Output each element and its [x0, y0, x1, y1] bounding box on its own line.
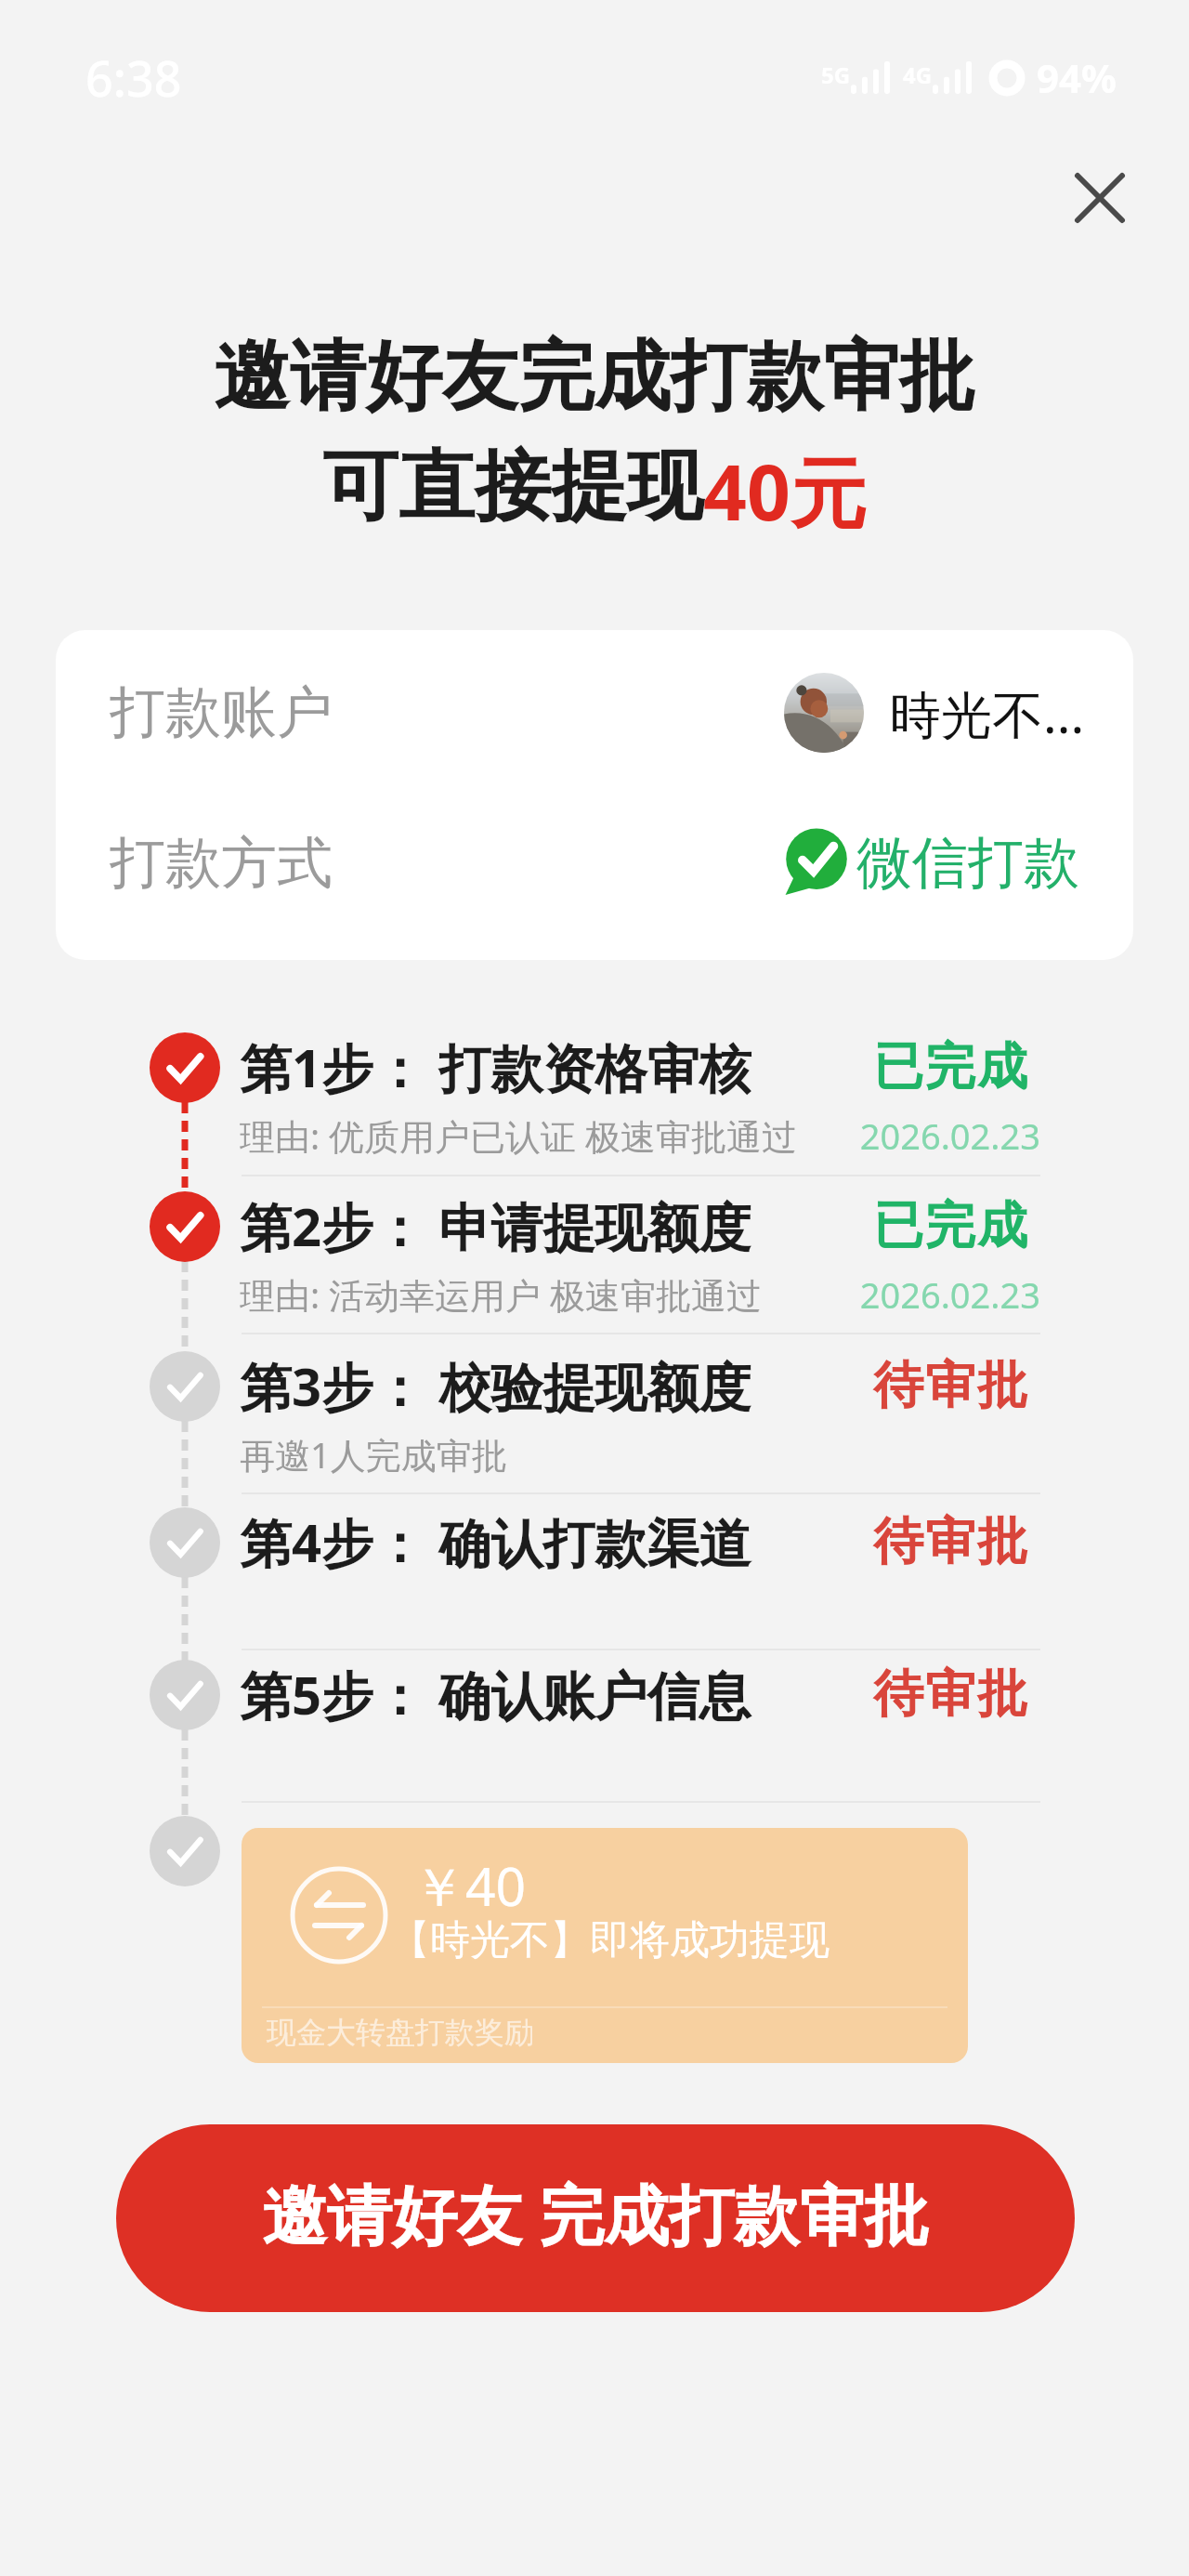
- staticText: 2026.02.23: [762, 1111, 1040, 1160]
- staticText: 已完成: [751, 1035, 1029, 1098]
- staticText: 5G: [821, 59, 851, 90]
- staticText: 待审批: [751, 1354, 1029, 1417]
- staticText: 時光不...: [890, 678, 1085, 748]
- staticText: 可直接提现: [322, 439, 703, 534]
- staticText: 邀请好友 完成打款审批: [262, 2169, 930, 2258]
- staticText: 待审批: [751, 1510, 1029, 1573]
- button[interactable]: [139, 1337, 1050, 1454]
- staticText: 【時光不】即将成功提现: [390, 1915, 830, 1965]
- staticText: 第1步： 打款资格审核: [240, 1032, 751, 1102]
- staticText: 第5步： 确认账户信息: [240, 1659, 751, 1729]
- button[interactable]: [139, 1493, 1050, 1583]
- staticText: 2026.02.23: [762, 1270, 1040, 1319]
- button[interactable]: [139, 1177, 1050, 1295]
- staticText: 已完成: [751, 1194, 1029, 1257]
- button[interactable]: 邀请好友 完成打款审批: [116, 2124, 1075, 2312]
- button[interactable]: ￥40: [242, 1828, 968, 2063]
- staticText: 邀请好友完成打款审批: [0, 329, 1189, 425]
- staticText: 打款方式: [110, 828, 333, 899]
- staticText: 打款账户: [110, 677, 333, 748]
- staticText: 40元: [703, 439, 867, 543]
- staticText: 第4步： 确认打款渠道: [240, 1506, 751, 1577]
- staticText: 第2步： 申请提现额度: [240, 1190, 751, 1261]
- staticText: 理由: 优质用户已认证 极速审批通过: [240, 1111, 797, 1160]
- staticText: 第3步： 校验提现额度: [240, 1350, 751, 1421]
- button[interactable]: [139, 1019, 1050, 1136]
- staticText: 待审批: [751, 1663, 1029, 1726]
- button[interactable]: 打款方式: [56, 781, 1133, 946]
- staticText: 再邀1人完成审批: [240, 1430, 507, 1479]
- button[interactable]: [139, 1646, 1050, 1735]
- button[interactable]: Close: [1058, 156, 1142, 240]
- staticText: 微信打款: [856, 828, 1079, 899]
- staticText: ￥40: [412, 1849, 527, 1922]
- button[interactable]: 打款账户: [56, 630, 1133, 795]
- staticText: 理由: 活动幸运用户 极速审批通过: [240, 1270, 762, 1319]
- staticText: 6:38: [85, 45, 182, 111]
- staticText: 94%: [1037, 51, 1117, 104]
- staticText: 4G: [903, 59, 933, 90]
- staticText: 现金大转盘打款奖励: [267, 2014, 534, 2051]
